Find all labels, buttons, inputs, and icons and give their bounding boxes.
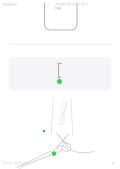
staticText: Distance sketches (2, 161, 25, 165)
staticText: Apple Watch Ultra (56, 1, 88, 6)
staticText: Distance (2, 1, 17, 7)
staticText: Tap (54, 5, 60, 10)
button[interactable]: Distance (2, 1, 17, 7)
